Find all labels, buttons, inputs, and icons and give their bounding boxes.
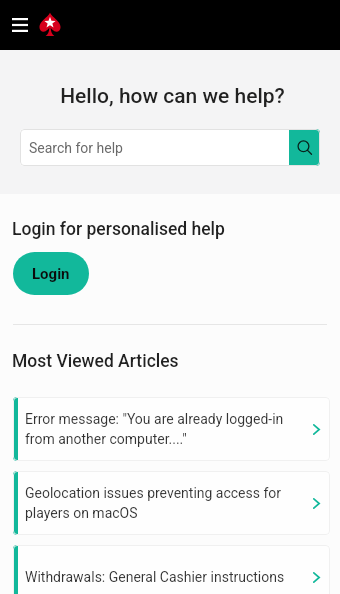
staticText: Login for personalised help xyxy=(12,219,225,240)
staticText: Login xyxy=(32,265,70,283)
staticText: Withdrawals: General Cashier instruction… xyxy=(25,569,297,585)
staticText: Geolocation issues preventing access for… xyxy=(25,485,297,521)
staticText: Search for help xyxy=(29,140,289,156)
button[interactable]: Error message: "You are already logged-i… xyxy=(13,397,330,461)
button[interactable]: Withdrawals: General Cashier instruction… xyxy=(13,545,330,594)
staticText: Hello, how can we help? xyxy=(60,84,285,109)
staticText: Most Viewed Articles xyxy=(12,351,179,372)
button[interactable]: Search for help xyxy=(20,129,320,166)
button[interactable]: Search xyxy=(289,129,320,166)
button[interactable]: Login xyxy=(13,252,89,295)
staticText: Error message: "You are already logged-i… xyxy=(25,411,297,447)
button[interactable]: Geolocation issues preventing access for… xyxy=(13,471,330,535)
button[interactable]: Menu xyxy=(0,5,40,45)
